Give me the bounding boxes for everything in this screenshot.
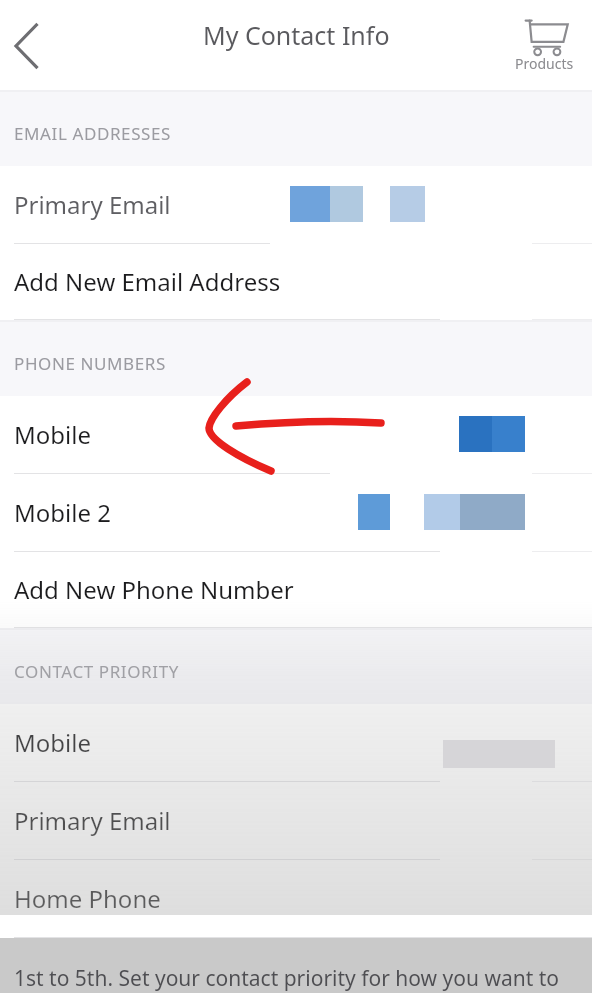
staticText: Primary Email [14, 188, 171, 221]
button[interactable]: Mobile 2 [0, 474, 592, 552]
button[interactable]: Mobile [0, 704, 592, 782]
button[interactable]: Back [0, 18, 56, 74]
staticText: EMAIL ADDRESSES [14, 122, 171, 145]
button[interactable]: Primary Email [0, 782, 592, 860]
staticText: Mobile 2 [14, 496, 111, 529]
button[interactable]: Products [504, 16, 584, 73]
staticText: Add New Phone Number [14, 573, 294, 606]
button[interactable]: Add New Email Address [0, 244, 592, 320]
staticText: My Contact Info [203, 18, 390, 52]
staticText: CONTACT PRIORITY [14, 660, 179, 683]
button[interactable]: Home Phone [0, 860, 592, 938]
staticText: Mobile [14, 418, 91, 451]
staticText: PHONE NUMBERS [14, 352, 166, 375]
staticText: 1st to 5th. Set your contact priority fo… [14, 964, 586, 993]
staticText: Products [515, 54, 574, 73]
staticText: Primary Email [14, 804, 171, 837]
staticText: Add New Email Address [14, 265, 281, 298]
button[interactable]: Mobile [0, 396, 592, 474]
button[interactable]: Primary Email [0, 166, 592, 244]
button[interactable]: Add New Phone Number [0, 552, 592, 628]
staticText: Home Phone [14, 882, 161, 915]
staticText: Mobile [14, 726, 91, 759]
